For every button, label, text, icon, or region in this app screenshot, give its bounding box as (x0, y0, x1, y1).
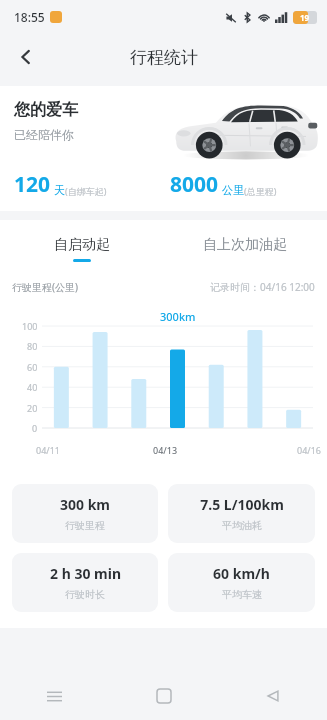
button[interactable]: 60 km/h (168, 553, 315, 612)
staticText: 已经陪伴你 (14, 127, 74, 142)
button[interactable]: 7.5 L/100km (168, 484, 315, 543)
staticText: 60 (27, 361, 38, 373)
staticText: (自绑车起) (65, 185, 107, 197)
staticText: 您的爱车 (14, 100, 78, 120)
button[interactable]: 2 h 30 min (12, 553, 158, 612)
staticText: 天 (54, 183, 65, 197)
staticText: 60 km/h (213, 564, 270, 583)
staticText: 20 (27, 402, 38, 414)
staticText: 行驶时长 (65, 588, 105, 601)
staticText: 公里 (222, 183, 244, 197)
staticText: 18:55 (14, 9, 45, 25)
staticText: 19 (300, 12, 310, 23)
staticText: 80 (27, 340, 38, 352)
staticText: 行程统计 (130, 47, 198, 68)
staticText: 7.5 L/100km (200, 495, 284, 514)
button[interactable]: Recent apps (0, 672, 109, 720)
staticText: 04/16 (297, 444, 321, 456)
staticText: 0 (32, 422, 38, 434)
staticText: 04/13 (153, 444, 178, 456)
staticText: 300km (160, 309, 196, 324)
button[interactable]: 300 km (12, 484, 158, 543)
staticText: 8000 (170, 170, 219, 199)
staticText: 自启动起 (54, 236, 110, 254)
button[interactable]: 自启动起 (0, 232, 163, 266)
button[interactable]: 自上次加油起 (163, 232, 327, 266)
staticText: 100 (22, 320, 38, 332)
staticText: 记录时间：04/16 12:00 (210, 280, 315, 294)
staticText: 行驶里程 (65, 519, 105, 532)
staticText: (总里程) (244, 185, 277, 197)
staticText: 300 km (60, 495, 110, 514)
staticText: 04/11 (36, 444, 60, 456)
button[interactable]: Home (109, 672, 218, 720)
button[interactable]: Back (218, 672, 327, 720)
button[interactable]: Back (6, 37, 46, 77)
staticText: 120 (14, 170, 51, 199)
staticText: 40 (27, 381, 38, 393)
staticText: 自上次加油起 (203, 236, 287, 254)
staticText: 行驶里程(公里) (12, 280, 78, 294)
staticText: 平均车速 (222, 588, 262, 601)
staticText: 2 h 30 min (50, 564, 121, 583)
staticText: 平均油耗 (222, 519, 262, 532)
